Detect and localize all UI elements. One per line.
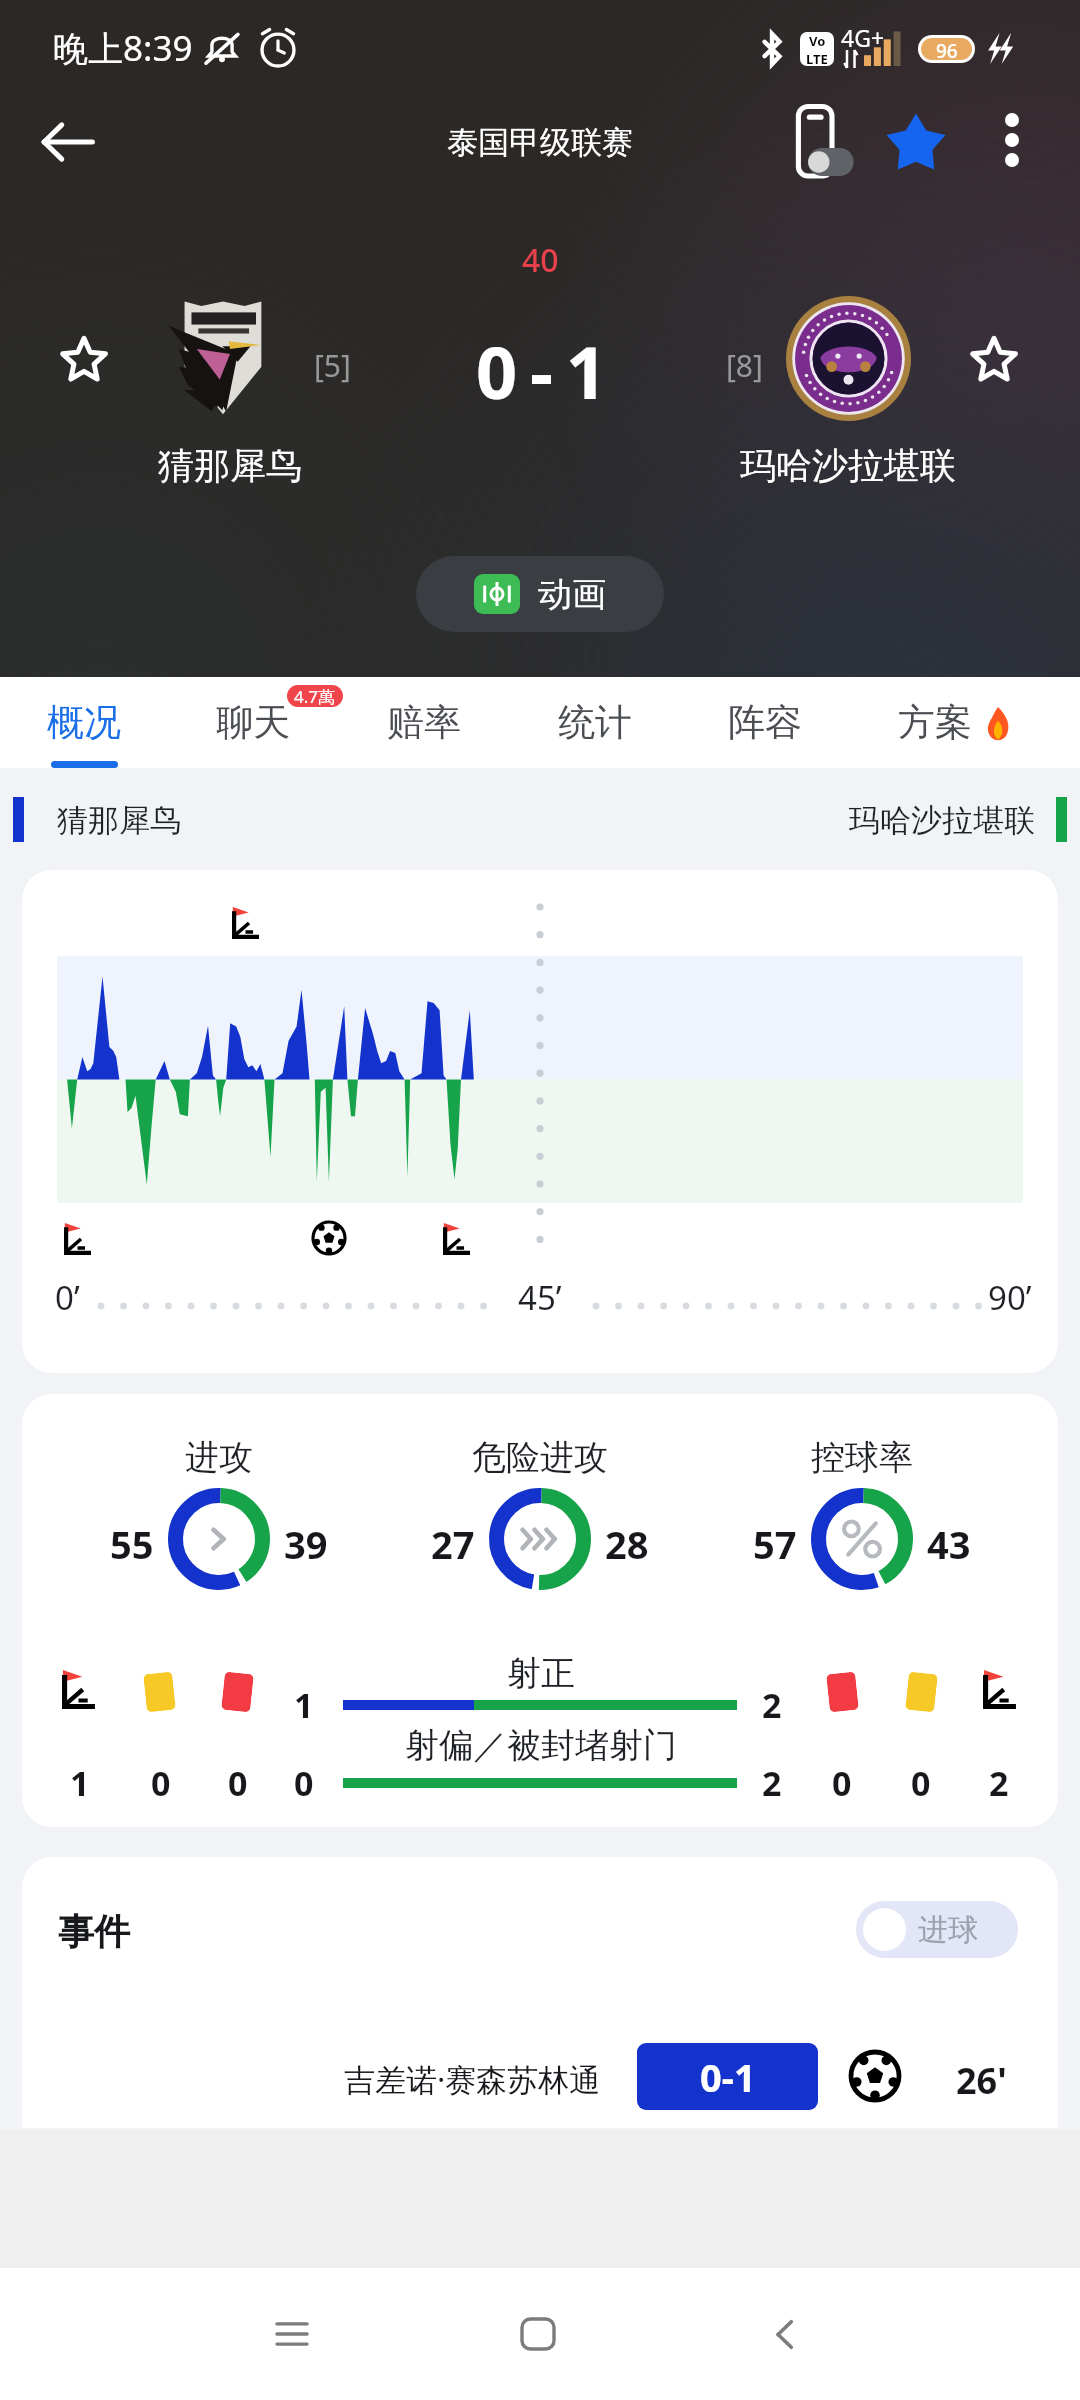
staticText: 0 (228, 1760, 248, 1806)
button[interactable]: Recent apps (222, 2268, 362, 2400)
staticText: 0 - 1 (476, 322, 604, 420)
staticText: 39 (284, 1518, 328, 1570)
button[interactable]: Home (468, 2268, 608, 2400)
staticText: [5] (314, 345, 351, 386)
button[interactable]: 方案 (871, 677, 1041, 768)
button[interactable]: 概况 (0, 677, 169, 768)
button[interactable]: 赔率 (339, 677, 509, 768)
staticText: 赔率 (387, 699, 461, 746)
button[interactable]: 阵容 (680, 677, 850, 768)
staticText: 96 (936, 38, 958, 60)
staticText: 进球 (918, 1911, 978, 1949)
staticText: 0’ (55, 1275, 80, 1320)
staticText: 57 (753, 1518, 797, 1570)
button[interactable]: 吉差诺·赛森苏林通 (22, 2017, 1058, 2128)
staticText: 28 (605, 1518, 649, 1570)
staticText: 事件 (58, 1909, 130, 1954)
staticText: [8] (726, 345, 763, 386)
staticText: 90’ (988, 1275, 1032, 1320)
button[interactable]: 聊天 (168, 677, 338, 768)
button[interactable]: 进球 (856, 1901, 1018, 1958)
staticText: 1 (70, 1760, 90, 1806)
staticText: 射偏／被封堵射门 (405, 1724, 677, 1767)
button[interactable]: Back (714, 2268, 854, 2400)
staticText: 0 (911, 1760, 931, 1806)
staticText: 43 (927, 1518, 971, 1570)
staticText: 聊天 (216, 699, 290, 746)
staticText: 2 (989, 1760, 1009, 1806)
staticText: LTE (806, 50, 828, 66)
staticText: 0 (294, 1760, 314, 1806)
staticText: 2 (762, 1760, 782, 1806)
staticText: 射正 (507, 1652, 575, 1695)
button[interactable]: Live notification (780, 96, 872, 188)
button[interactable]: 统计 (510, 677, 680, 768)
staticText: 危险进攻 (472, 1436, 608, 1479)
staticText: 进攻 (185, 1436, 253, 1479)
button[interactable]: Favourite away team (934, 299, 1054, 419)
staticText: 玛哈沙拉堪联 (740, 443, 956, 488)
staticText: 0 (832, 1760, 852, 1806)
staticText: 4G+ (841, 22, 885, 53)
staticText: 27 (431, 1518, 475, 1570)
staticText: 控球率 (811, 1436, 913, 1479)
staticText: 55 (110, 1518, 154, 1570)
button[interactable]: Favourite home team (24, 299, 144, 419)
button[interactable]: 进攻 (22, 1394, 1058, 1827)
staticText: 泰国甲级联赛 (447, 123, 633, 162)
button[interactable]: Back (22, 96, 114, 188)
staticText: 吉差诺·赛森苏林通 (344, 2058, 601, 2100)
button[interactable]: Favorite (870, 96, 962, 188)
staticText: 0-1 (700, 2051, 756, 2103)
button[interactable]: 动画 (416, 556, 664, 632)
staticText: 26' (956, 2056, 1007, 2105)
staticText: 45’ (518, 1275, 562, 1320)
staticText: 40 (522, 238, 559, 282)
staticText: 2 (762, 1682, 782, 1728)
staticText: 猜那犀鸟 (57, 801, 181, 840)
staticText: Vo (809, 32, 826, 50)
staticText: 晚上8:39 (53, 24, 193, 72)
staticText: 0 (151, 1760, 171, 1806)
staticText: 玛哈沙拉堪联 (849, 801, 1035, 840)
staticText: 猜那犀鸟 (158, 443, 302, 488)
staticText: 4.7萬 (294, 685, 336, 707)
button[interactable]: 0’ (22, 870, 1058, 1373)
staticText: 阵容 (728, 699, 802, 746)
staticText: 1 (294, 1682, 314, 1728)
staticText: 统计 (558, 699, 632, 746)
button[interactable]: More options (968, 96, 1056, 184)
staticText: 概况 (47, 699, 121, 746)
staticText: 方案 (898, 699, 972, 746)
staticText: 动画 (538, 573, 606, 616)
